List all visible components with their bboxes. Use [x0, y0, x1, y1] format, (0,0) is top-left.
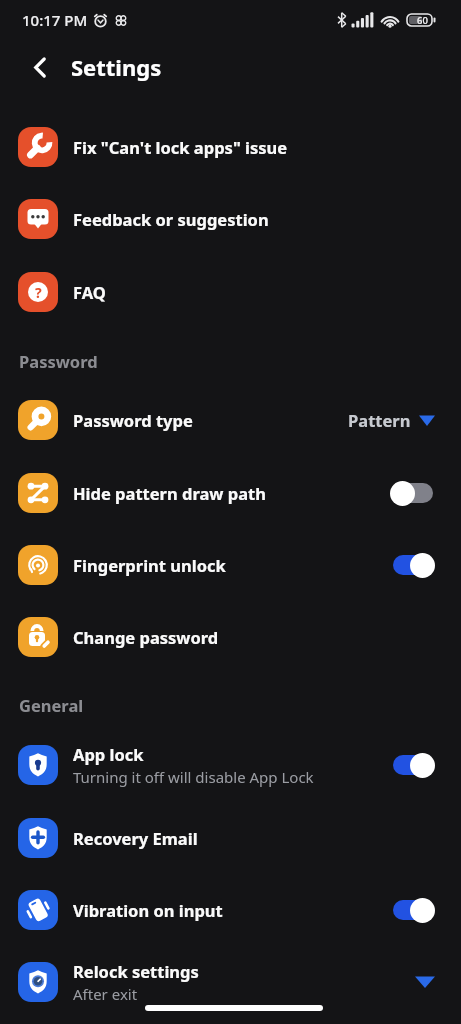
- staticText: General: [19, 694, 84, 716]
- staticText: ?: [35, 283, 42, 302]
- button[interactable]: Vibration on input: [0, 874, 461, 946]
- button[interactable]: [390, 751, 435, 779]
- staticText: Relock settings: [73, 960, 199, 982]
- button[interactable]: Pattern: [348, 409, 435, 431]
- button[interactable]: Recovery Email: [0, 801, 461, 874]
- button[interactable]: Fix "Can't lock apps" issue: [0, 110, 461, 183]
- staticText: Password: [19, 350, 98, 372]
- staticText: FAQ: [73, 281, 106, 303]
- staticText: Recovery Email: [73, 827, 198, 849]
- button[interactable]: Feedback or suggestion: [0, 183, 461, 255]
- staticText: Turning it off will disable App Lock: [73, 767, 314, 787]
- staticText: Password type: [73, 409, 193, 431]
- staticText: Feedback or suggestion: [73, 208, 269, 230]
- button[interactable]: Password type: [0, 383, 461, 456]
- button[interactable]: Hide pattern draw path: [0, 456, 461, 529]
- button[interactable]: Change password: [0, 601, 461, 673]
- staticText: 60: [417, 14, 428, 27]
- staticText: 10:17 PM: [22, 10, 88, 30]
- staticText: App lock: [73, 743, 144, 765]
- button[interactable]: [390, 479, 435, 507]
- staticText: After exit: [73, 984, 138, 1004]
- button[interactable]: [390, 551, 435, 579]
- staticText: Change password: [73, 626, 219, 648]
- button[interactable]: App lock: [0, 729, 461, 801]
- staticText: Hide pattern draw path: [73, 482, 266, 504]
- button[interactable]: [390, 896, 435, 924]
- staticText: Vibration on input: [73, 899, 223, 921]
- staticText: Settings: [71, 52, 162, 82]
- staticText: Pattern: [348, 409, 411, 431]
- button[interactable]: Fingerprint unlock: [0, 529, 461, 601]
- staticText: Fix "Can't lock apps" issue: [73, 136, 288, 158]
- staticText: Fingerprint unlock: [73, 554, 226, 576]
- button[interactable]: Relock settings: [0, 946, 461, 1018]
- button[interactable]: [22, 49, 58, 85]
- button[interactable]: ?: [0, 255, 461, 328]
